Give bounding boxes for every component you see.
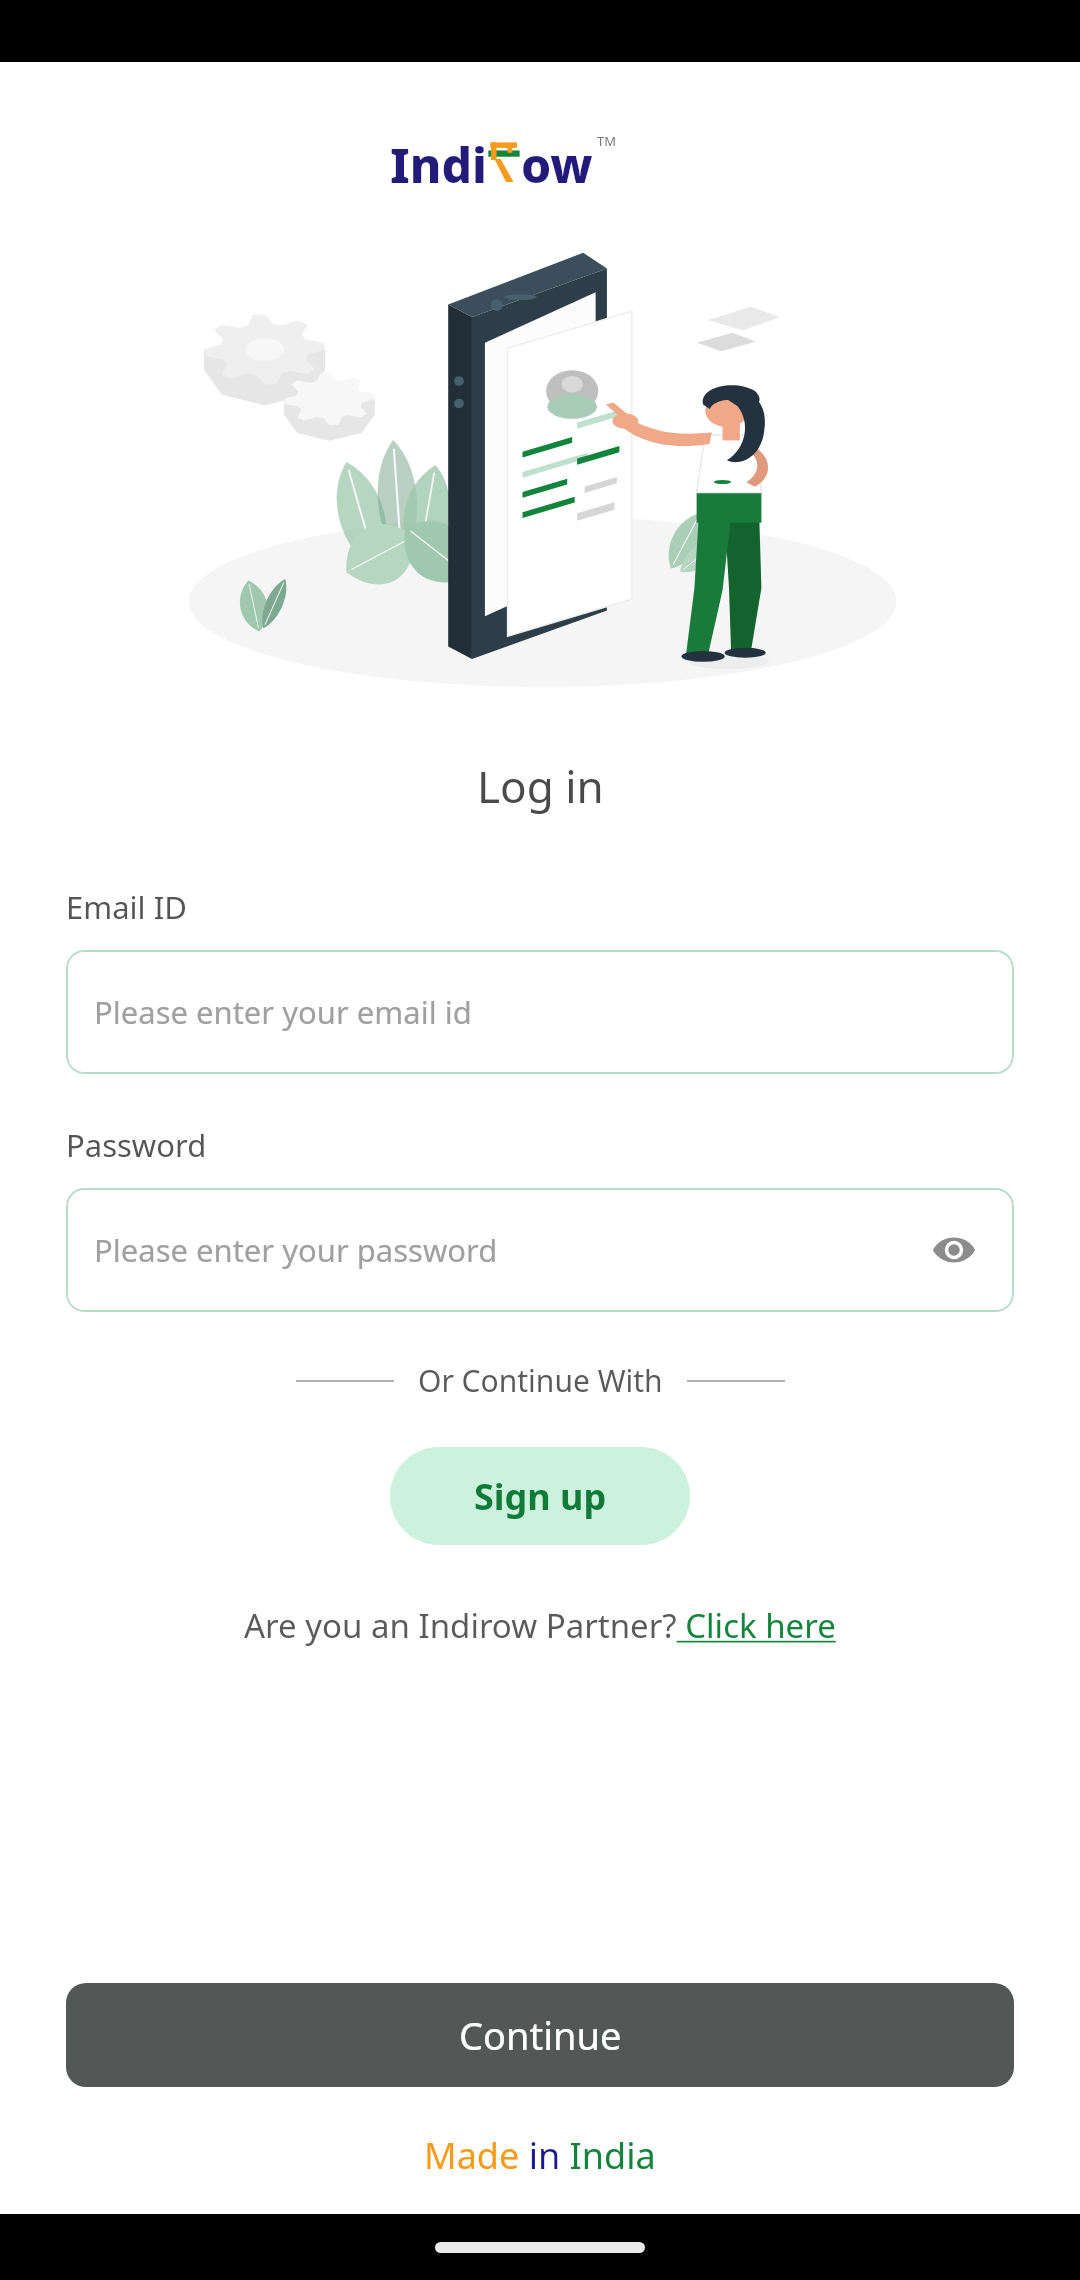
button[interactable]: Please enter your email id	[66, 950, 1014, 1074]
button[interactable]: Please enter your password	[66, 1188, 1014, 1312]
staticText: ow	[521, 132, 593, 190]
staticText: Sign up	[474, 1472, 607, 1521]
staticText: TM	[597, 132, 617, 150]
staticText: Please enter your password	[94, 1229, 498, 1271]
staticText: Log in	[477, 756, 604, 816]
staticText: Email ID	[66, 886, 187, 928]
staticText: Or Continue With	[418, 1360, 663, 1401]
button[interactable]: Are you an Indirow Partner? Click here	[0, 1603, 1080, 1648]
button[interactable]: Sign up	[390, 1447, 690, 1545]
button[interactable]: Show password	[922, 1218, 986, 1282]
staticText: Made in India	[424, 2131, 656, 2180]
staticText: Continue	[459, 2009, 622, 2061]
staticText: Are you an Indirow Partner? Click here	[244, 1603, 836, 1648]
staticText: Please enter your email id	[94, 991, 472, 1033]
staticText: Password	[66, 1124, 207, 1166]
staticText: Indi	[390, 132, 487, 190]
button[interactable]: Continue	[66, 1983, 1014, 2087]
